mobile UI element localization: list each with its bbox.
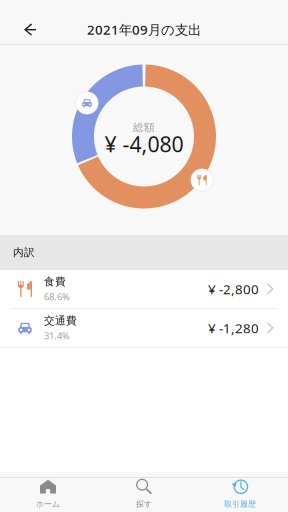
button[interactable]: Back	[10, 9, 50, 49]
staticText: ¥ -2,800	[208, 280, 259, 298]
button[interactable]: 取引履歴	[192, 477, 288, 512]
staticText: 内訳	[13, 246, 35, 259]
staticText: ¥ -1,280	[208, 319, 259, 337]
button[interactable]: 探す	[96, 477, 192, 512]
staticText: 68.6%	[44, 290, 70, 303]
staticText: 2021年09月の支出	[87, 21, 201, 38]
staticText: ¥ -4,080	[104, 130, 183, 158]
staticText: 食費	[44, 275, 66, 288]
button[interactable]: ホーム	[0, 477, 96, 512]
staticText: 総額	[133, 121, 155, 134]
staticText: 交通費	[44, 314, 77, 327]
staticText: ホーム	[36, 499, 60, 509]
staticText: 31.4%	[44, 329, 70, 342]
button[interactable]: 食費	[0, 270, 288, 309]
button[interactable]: 交通費	[0, 309, 288, 348]
staticText: 取引履歴	[224, 499, 256, 509]
staticText: 探す	[136, 499, 152, 509]
